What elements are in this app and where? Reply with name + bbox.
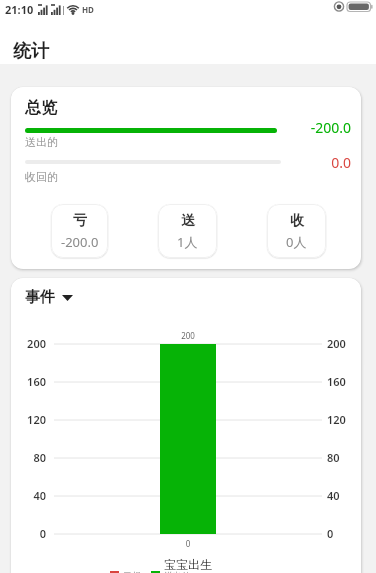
staticText: 0 — [327, 526, 334, 541]
staticText: 送 — [181, 212, 195, 230]
staticText: 200 — [160, 330, 216, 341]
staticText: 160 — [327, 374, 346, 389]
staticText: 120 — [327, 412, 346, 427]
button[interactable]: 收 — [267, 204, 326, 258]
staticText: 80 — [327, 450, 340, 465]
staticText: 0人 — [286, 233, 307, 251]
staticText: 收 — [290, 212, 304, 230]
staticText: 宝宝出生 — [160, 557, 216, 572]
staticText: 80 — [11, 450, 46, 465]
staticText: 21:10 — [5, 2, 34, 17]
staticText: 收回的 — [25, 170, 58, 184]
staticText: HD — [82, 4, 94, 15]
staticText: 200 — [327, 336, 346, 351]
staticText: 40 — [327, 488, 340, 503]
staticText: 送出的 — [25, 135, 58, 149]
staticText: 亏损 — [123, 570, 141, 573]
staticText: -200.0 — [11, 118, 351, 137]
staticText: 总览 — [25, 98, 57, 118]
button[interactable]: 事件 — [25, 288, 73, 307]
button[interactable]: 亏 — [51, 204, 108, 258]
staticText: -200.0 — [61, 233, 99, 251]
staticText: 送出的 — [164, 570, 191, 573]
button[interactable]: 送 — [158, 204, 217, 258]
staticText: 200 — [11, 336, 46, 351]
staticText: 亏 — [73, 212, 87, 230]
staticText: 120 — [11, 412, 46, 427]
staticText: 事件 — [25, 288, 55, 307]
staticText: 0 — [160, 538, 216, 549]
staticText: 0 — [11, 526, 46, 541]
staticText: 1人 — [177, 233, 198, 251]
staticText: 统计 — [13, 40, 49, 63]
staticText: 0.0 — [11, 153, 351, 172]
staticText: 40 — [11, 488, 46, 503]
staticText: 160 — [11, 374, 46, 389]
